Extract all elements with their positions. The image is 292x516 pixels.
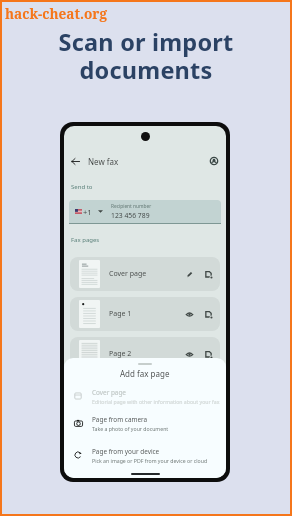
staticText: Recipient number xyxy=(111,203,152,210)
button[interactable]: Replace page xyxy=(201,267,216,282)
staticText: Page 1 xyxy=(109,309,132,319)
button[interactable]: Replace page xyxy=(201,307,216,322)
staticText: hack-cheat.org xyxy=(5,4,107,23)
staticText: Cover page xyxy=(92,388,126,397)
button[interactable]: Cover page xyxy=(72,386,224,406)
staticText: Pick an image or PDF from your device or… xyxy=(92,457,208,464)
staticText: Fax pages xyxy=(71,236,100,244)
staticText: Scan or import documents xyxy=(0,26,292,86)
button[interactable]: Preview xyxy=(182,307,197,322)
button[interactable]: Back xyxy=(66,152,84,170)
staticText: Page from your device xyxy=(92,447,160,456)
button[interactable]: Edit xyxy=(182,267,197,282)
staticText: Cover page xyxy=(109,269,147,279)
button[interactable]: Page 2 xyxy=(70,337,220,371)
button[interactable]: Replace page xyxy=(201,347,216,362)
button[interactable]: Page 1 xyxy=(70,297,220,331)
staticText: Take a photo of your document xyxy=(92,425,169,432)
staticText: Page 2 xyxy=(109,349,132,359)
staticText: Editorial page with other information ab… xyxy=(92,398,220,405)
button[interactable]: Preview xyxy=(182,347,197,362)
staticText: +1 xyxy=(83,207,92,217)
staticText: 123 456 789 xyxy=(111,211,150,220)
button[interactable]: +1 xyxy=(69,200,221,223)
button[interactable]: Page from your device xyxy=(72,445,224,465)
staticText: New fax xyxy=(88,156,119,167)
button[interactable]: Page from camera xyxy=(72,413,224,433)
staticText: Send to xyxy=(71,183,93,191)
button[interactable]: Account xyxy=(206,153,222,169)
staticText: Add fax page xyxy=(120,368,170,379)
staticText: Page from camera xyxy=(92,415,148,424)
button[interactable]: Cover page xyxy=(70,257,220,291)
